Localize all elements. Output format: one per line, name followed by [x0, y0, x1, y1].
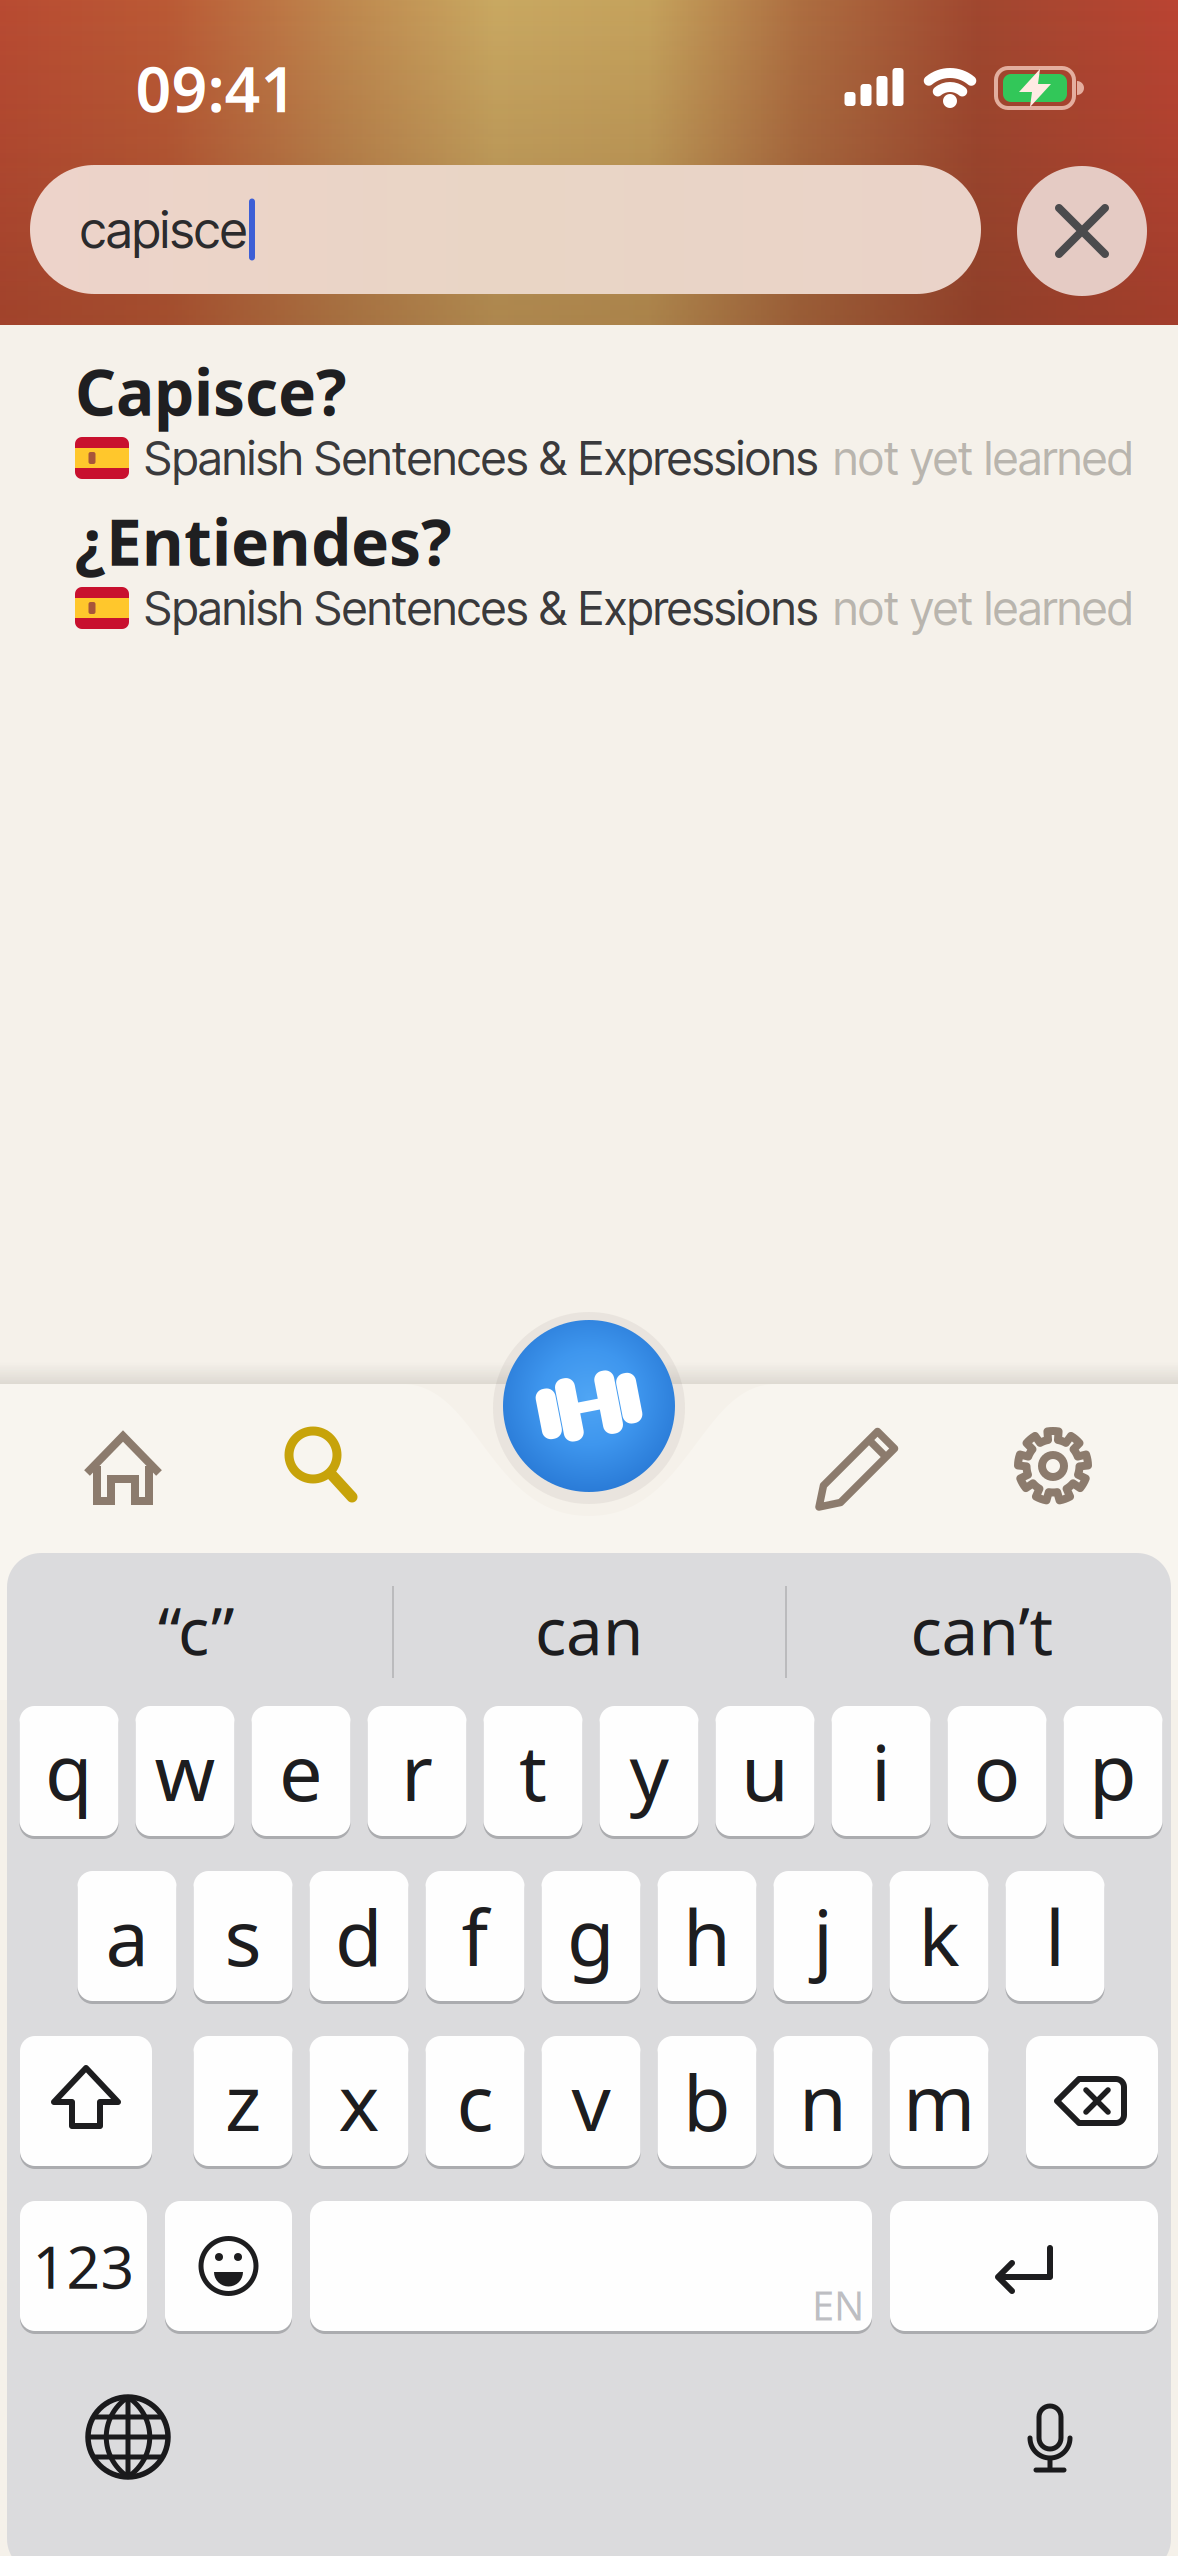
staticText: can	[535, 1587, 643, 1673]
button[interactable]	[1026, 2036, 1158, 2166]
staticText: l	[1045, 1885, 1065, 1987]
button[interactable]: EN	[310, 2201, 872, 2331]
button[interactable]: a	[77, 1871, 176, 2001]
staticText: not yet learned	[833, 430, 1133, 486]
button[interactable]: s	[193, 1871, 292, 2001]
staticText: q	[45, 1720, 93, 1822]
button[interactable]: Capisce?	[75, 365, 1178, 525]
button[interactable]	[20, 2036, 152, 2166]
staticText: h	[683, 1885, 731, 1987]
staticText: s	[224, 1885, 261, 1987]
button[interactable]: n	[773, 2036, 872, 2166]
button[interactable]: p	[1063, 1706, 1162, 1836]
button[interactable]: b	[657, 2036, 756, 2166]
button[interactable]	[63, 2372, 193, 2502]
button[interactable]: r	[367, 1706, 466, 1836]
staticText: t	[519, 1720, 547, 1822]
staticText: n	[799, 2050, 847, 2152]
button[interactable]: h	[657, 1871, 756, 2001]
staticText: o	[973, 1720, 1020, 1822]
button[interactable]	[63, 1408, 183, 1528]
staticText: w	[154, 1720, 215, 1822]
staticText: ¿Entiendes?	[75, 498, 452, 583]
staticText: x	[338, 2050, 379, 2152]
staticText: a	[105, 1885, 148, 1987]
staticText: 123	[32, 2227, 134, 2305]
staticText: y	[629, 1720, 668, 1822]
button[interactable]: m	[889, 2036, 988, 2166]
button[interactable]	[1017, 166, 1147, 296]
button[interactable]: v	[541, 2036, 640, 2166]
button[interactable]	[797, 1408, 917, 1528]
button[interactable]: 123	[20, 2201, 147, 2331]
staticText: m	[903, 2050, 975, 2152]
staticText: r	[401, 1720, 433, 1822]
staticText: i	[871, 1720, 891, 1822]
staticText: “c”	[158, 1587, 234, 1673]
staticText: p	[1089, 1720, 1137, 1822]
button[interactable]: o	[947, 1706, 1046, 1836]
staticText: e	[279, 1720, 323, 1822]
staticText: g	[567, 1885, 615, 1987]
staticText: not yet learned	[833, 580, 1133, 636]
button[interactable]	[993, 1408, 1113, 1528]
staticText: can’t	[910, 1587, 1053, 1673]
staticText: f	[461, 1885, 488, 1987]
button[interactable]	[890, 2201, 1158, 2331]
staticText: z	[225, 2050, 261, 2152]
staticText: Spanish Sentences & Expressions	[144, 430, 818, 486]
staticText: Spanish Sentences & Expressions	[144, 580, 818, 636]
button[interactable]: i	[831, 1706, 930, 1836]
button[interactable]: “c”	[26, 1580, 366, 1680]
button[interactable]: x	[309, 2036, 408, 2166]
button[interactable]: d	[309, 1871, 408, 2001]
button[interactable]: capisce	[30, 165, 981, 294]
button[interactable]: f	[425, 1871, 524, 2001]
button[interactable]: can	[419, 1580, 759, 1680]
button[interactable]: e	[251, 1706, 350, 1836]
button[interactable]: u	[715, 1706, 814, 1836]
staticText: EN	[812, 2278, 864, 2331]
button[interactable]: can’t	[812, 1580, 1152, 1680]
staticText: b	[683, 2050, 731, 2152]
staticText: capisce	[80, 199, 247, 260]
button[interactable]: q	[19, 1706, 118, 1836]
button[interactable]: z	[193, 2036, 292, 2166]
button[interactable]	[985, 2372, 1115, 2502]
button[interactable]	[165, 2201, 292, 2331]
button[interactable]: g	[541, 1871, 640, 2001]
button[interactable]: k	[889, 1871, 988, 2001]
button[interactable]: w	[135, 1706, 234, 1836]
staticText: u	[741, 1720, 789, 1822]
staticText: c	[456, 2050, 493, 2152]
staticText: Capisce?	[75, 348, 347, 433]
staticText: 09:41	[135, 46, 296, 130]
button[interactable]	[503, 1320, 675, 1492]
button[interactable]: y	[599, 1706, 698, 1836]
button[interactable]: l	[1005, 1871, 1104, 2001]
staticText: j	[813, 1885, 833, 1987]
button[interactable]: c	[425, 2036, 524, 2166]
button[interactable]: j	[773, 1871, 872, 2001]
staticText: d	[335, 1885, 383, 1987]
button[interactable]: ¿Entiendes?	[75, 515, 1178, 675]
staticText: v	[571, 2050, 610, 2152]
button[interactable]	[260, 1408, 380, 1528]
button[interactable]: t	[483, 1706, 582, 1836]
staticText: k	[918, 1885, 959, 1987]
